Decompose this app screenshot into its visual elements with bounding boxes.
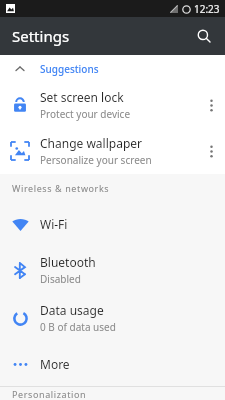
staticText: Set screen lock bbox=[40, 89, 124, 105]
staticText: 0 B of data used bbox=[40, 320, 116, 334]
button[interactable]: Change wallpaper bbox=[0, 128, 225, 174]
staticText: Personalize your screen bbox=[40, 153, 152, 167]
staticText: Personalization bbox=[12, 388, 87, 400]
staticText: Protect your device bbox=[40, 107, 131, 121]
button[interactable]: Set screen lock bbox=[0, 82, 225, 128]
staticText: Suggestions bbox=[40, 62, 99, 76]
staticText: Disabled bbox=[40, 272, 81, 286]
button[interactable]: Search bbox=[189, 21, 219, 51]
button[interactable]: Suggestions bbox=[0, 55, 225, 82]
staticText: Wi-Fi bbox=[40, 216, 68, 232]
staticText: Data usage bbox=[40, 302, 104, 318]
staticText: More bbox=[40, 356, 70, 372]
button[interactable]: Wi-Fi bbox=[0, 202, 225, 246]
staticText: Settings bbox=[12, 26, 70, 46]
button[interactable]: More options bbox=[197, 82, 225, 128]
button[interactable]: More options bbox=[197, 128, 225, 174]
button[interactable]: Bluetooth bbox=[0, 246, 225, 294]
staticText: Change wallpaper bbox=[40, 135, 142, 151]
button[interactable]: More bbox=[0, 342, 225, 386]
staticText: Bluetooth bbox=[40, 254, 96, 270]
button[interactable]: Data usage bbox=[0, 294, 225, 342]
staticText: Wireless & networks bbox=[12, 182, 110, 194]
staticText: 12:23 bbox=[194, 2, 220, 16]
